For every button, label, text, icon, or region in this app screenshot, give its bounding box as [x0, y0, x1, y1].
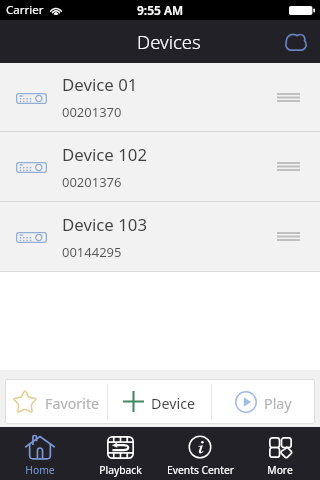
staticText: 9:55 AM — [137, 2, 184, 18]
staticText: Device 102 — [62, 143, 147, 166]
staticText: Playback — [99, 463, 142, 477]
staticText: Play — [264, 394, 292, 413]
staticText: Device 01 — [62, 73, 138, 96]
staticText: Devices — [137, 29, 201, 54]
staticText: 00144295 — [62, 243, 122, 261]
staticText: Favorite — [45, 394, 100, 413]
staticText: 00201376 — [62, 173, 122, 191]
staticText: Carrier — [6, 2, 44, 18]
button[interactable]: Playback — [80, 427, 160, 480]
staticText: Device — [151, 394, 196, 413]
button[interactable]: More — [240, 427, 320, 480]
button[interactable]: Favorite — [5, 379, 107, 424]
button[interactable]: Reorder — [268, 202, 308, 271]
button[interactable]: Events Center — [160, 427, 240, 480]
button[interactable]: Play — [212, 379, 315, 424]
staticText: More — [267, 463, 293, 477]
button[interactable]: Device — [108, 379, 211, 424]
staticText: Home — [25, 463, 55, 477]
button[interactable]: Home — [0, 427, 80, 480]
button[interactable]: Device 01 — [0, 63, 320, 131]
staticText: 00201370 — [62, 103, 122, 121]
button[interactable]: Device 103 — [0, 202, 320, 271]
staticText: Events Center — [167, 463, 234, 477]
button[interactable]: Cloud — [278, 24, 314, 60]
staticText: Device 103 — [62, 213, 147, 236]
button[interactable]: Reorder — [268, 63, 308, 131]
button[interactable]: Reorder — [268, 132, 308, 201]
button[interactable]: Device 102 — [0, 132, 320, 201]
